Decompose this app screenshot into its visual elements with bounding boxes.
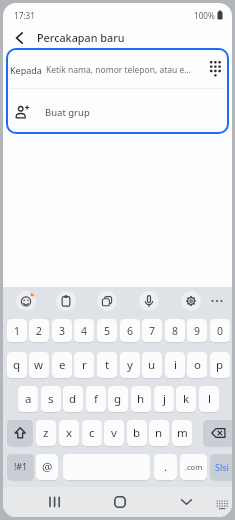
button[interactable]: 7 [142, 319, 162, 342]
button[interactable]: i [165, 352, 185, 378]
button[interactable]: 3 [52, 319, 72, 342]
button[interactable]: . [154, 454, 177, 480]
button[interactable]: a [18, 386, 38, 412]
button[interactable]: e [52, 352, 72, 378]
button[interactable]: Slsi [210, 454, 232, 480]
staticText: c [89, 425, 95, 441]
staticText: 8 [172, 324, 179, 338]
button[interactable] [203, 420, 232, 446]
button[interactable] [106, 489, 134, 515]
button[interactable]: Kepada [10, 48, 221, 88]
staticText: 6 [127, 324, 134, 338]
staticText: m [177, 425, 188, 441]
button[interactable] [139, 291, 159, 311]
staticText: 2 [36, 324, 43, 338]
button[interactable]: d [63, 386, 83, 412]
button[interactable] [7, 420, 33, 446]
staticText: v [111, 425, 117, 441]
staticText: j [163, 391, 166, 407]
button[interactable]: p [210, 352, 230, 378]
button[interactable]: b [127, 420, 147, 446]
button[interactable]: 4 [74, 319, 94, 342]
button[interactable]: m [172, 420, 192, 446]
button[interactable]: 9 [187, 319, 207, 342]
button[interactable]: t [97, 352, 117, 378]
button[interactable]: @ [36, 454, 58, 480]
staticText: l [208, 391, 211, 407]
button[interactable]: w [29, 352, 49, 378]
button[interactable]: !#1 [7, 454, 34, 480]
staticText: 17:31 [14, 10, 35, 21]
button[interactable]: y [120, 352, 140, 378]
staticText: Kepada [10, 64, 42, 76]
staticText: q [13, 357, 21, 373]
staticText: 9 [194, 324, 201, 338]
staticText: k [183, 391, 190, 407]
button[interactable]: .com [180, 454, 207, 480]
staticText: g [114, 391, 122, 407]
button[interactable]: j [154, 386, 174, 412]
button[interactable]: Buat grup [15, 89, 229, 132]
button[interactable] [41, 489, 69, 515]
button[interactable]: u [142, 352, 162, 378]
staticText: 1 [14, 324, 21, 338]
button[interactable]: 1 [7, 319, 27, 342]
button[interactable] [16, 291, 36, 311]
button[interactable]: 2 [29, 319, 49, 342]
button[interactable]: k [176, 386, 196, 412]
staticText: u [148, 357, 156, 373]
button[interactable] [172, 489, 200, 515]
staticText: z [43, 425, 49, 441]
staticText: i [174, 357, 177, 373]
button[interactable]: c [82, 420, 102, 446]
button[interactable]: 6 [120, 319, 140, 342]
button[interactable]: q [7, 352, 27, 378]
staticText: r [82, 357, 87, 373]
staticText: d [69, 391, 77, 407]
button[interactable]: h [131, 386, 151, 412]
staticText: 5 [104, 324, 111, 338]
staticText: h [137, 391, 145, 407]
button[interactable]: l [199, 386, 219, 412]
button[interactable]: x [59, 420, 79, 446]
staticText: f [94, 391, 98, 407]
button[interactable]: 5 [97, 319, 117, 342]
button[interactable]: f [86, 386, 106, 412]
staticText: y [127, 357, 133, 373]
button[interactable] [209, 295, 225, 307]
button[interactable]: g [108, 386, 128, 412]
staticText: . [164, 459, 168, 475]
button[interactable] [3, 27, 35, 48]
staticText: x [66, 425, 73, 441]
button[interactable] [181, 291, 201, 311]
staticText: Percakapan baru [37, 30, 125, 45]
staticText: b [133, 425, 141, 441]
staticText: 100% [194, 10, 215, 21]
button[interactable]: n [149, 420, 169, 446]
button[interactable]: v [104, 420, 124, 446]
staticText: Buat grup [45, 106, 90, 119]
button[interactable]: z [36, 420, 56, 446]
staticText: a [25, 391, 32, 407]
staticText: s [48, 391, 54, 407]
button[interactable]: o [187, 352, 207, 378]
staticText: 3 [59, 324, 66, 338]
staticText: e [59, 357, 66, 373]
button[interactable] [213, 498, 231, 512]
staticText: 0 [217, 324, 224, 338]
staticText: !#1 [14, 461, 28, 473]
staticText: t [105, 357, 110, 373]
staticText: .com [185, 462, 203, 472]
staticText: w [34, 357, 44, 373]
button[interactable]: r [74, 352, 94, 378]
button[interactable]: 8 [165, 319, 185, 342]
staticText: Slsi [215, 461, 229, 473]
button[interactable]: 0 [210, 319, 230, 342]
staticText: @ [42, 459, 53, 475]
button[interactable] [97, 291, 117, 311]
staticText: 7 [149, 324, 156, 338]
button[interactable]: s [41, 386, 61, 412]
button[interactable] [56, 291, 76, 311]
staticText: o [194, 357, 201, 373]
